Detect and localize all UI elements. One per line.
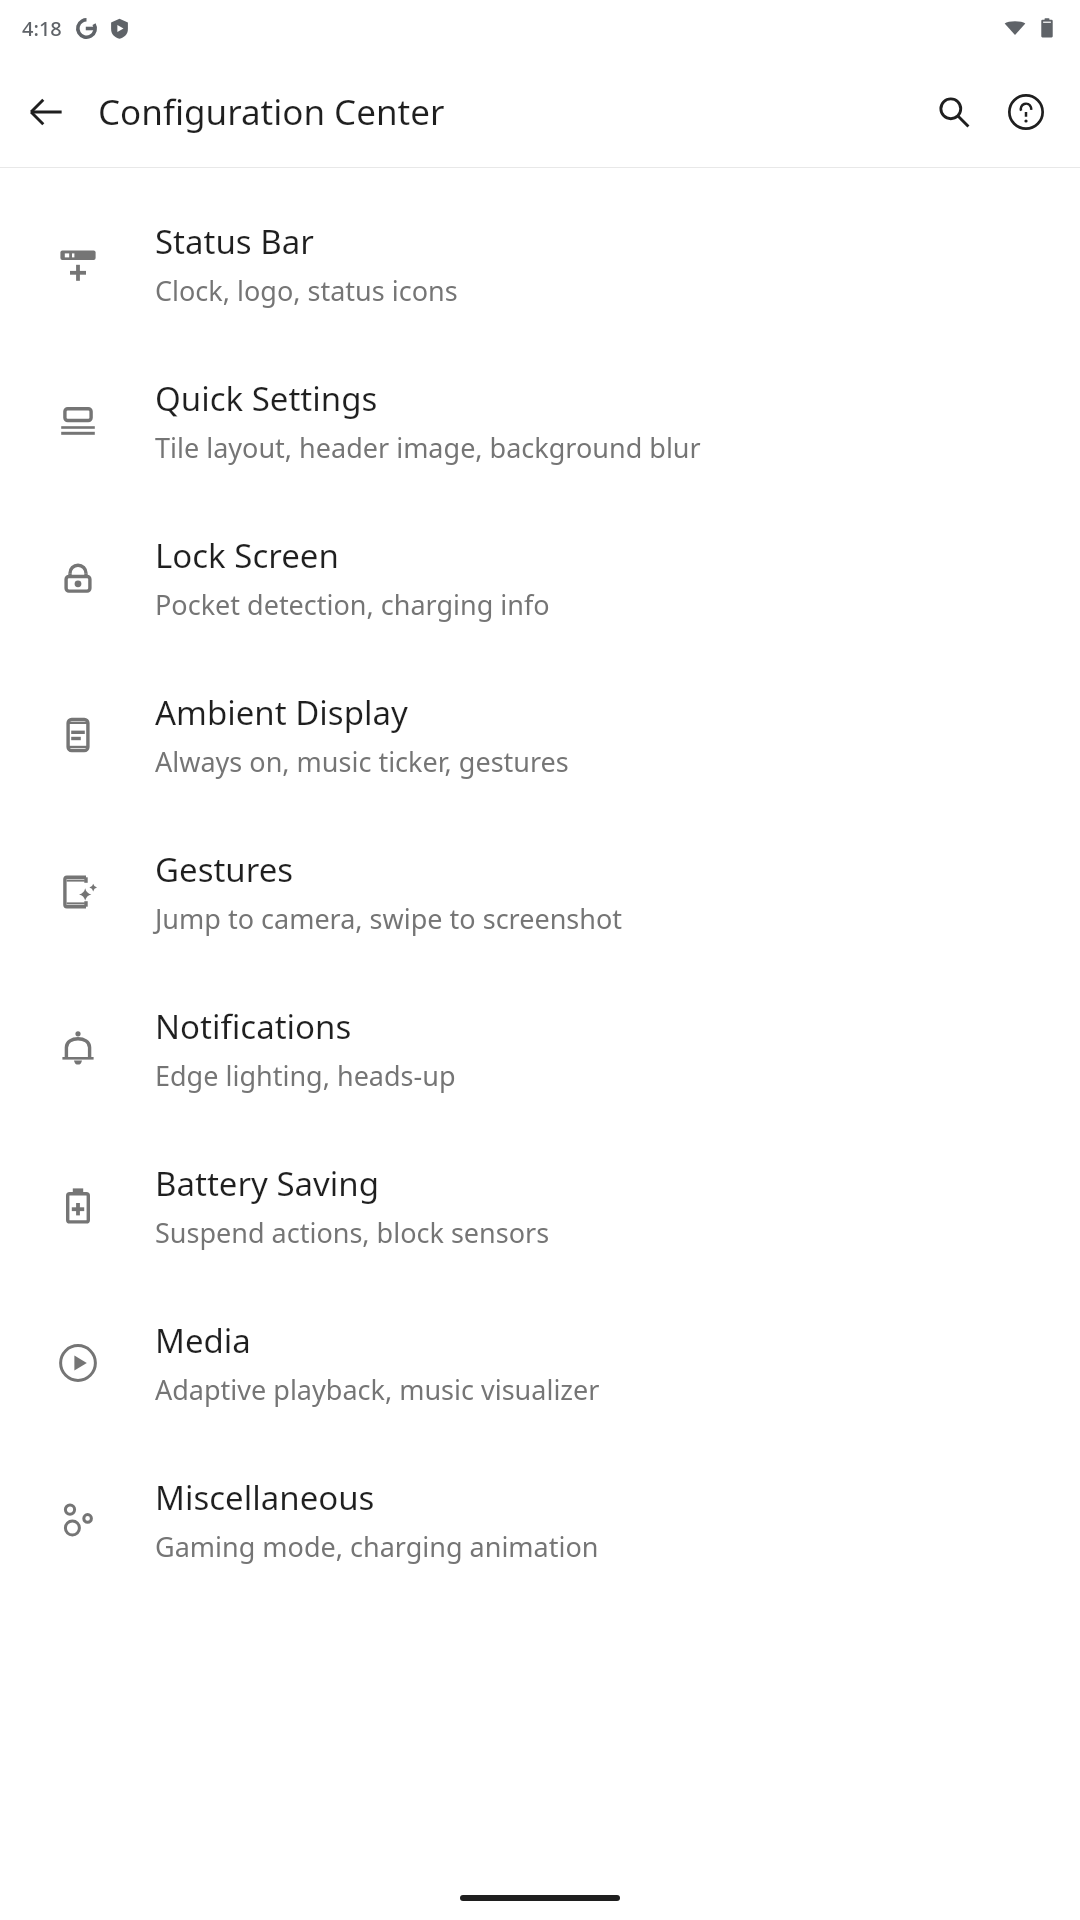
staticText: Battery Saving: [155, 1161, 380, 1206]
button[interactable]: Search: [918, 76, 990, 148]
staticText: Tile layout, header image, background bl…: [155, 429, 701, 466]
button[interactable]: Quick Settings: [0, 342, 1080, 499]
staticText: Quick Settings: [155, 376, 378, 421]
button[interactable]: Ambient Display: [0, 656, 1080, 813]
staticText: Notifications: [155, 1004, 352, 1049]
staticText: Lock Screen: [155, 533, 339, 578]
staticText: Status Bar: [155, 219, 314, 264]
staticText: Media: [155, 1318, 251, 1363]
button[interactable]: Back: [10, 76, 82, 148]
staticText: Miscellaneous: [155, 1475, 375, 1520]
staticText: Pocket detection, charging info: [155, 586, 550, 623]
button[interactable]: Miscellaneous: [0, 1441, 1080, 1598]
button[interactable]: Notifications: [0, 970, 1080, 1127]
staticText: Always on, music ticker, gestures: [155, 743, 569, 780]
staticText: Edge lighting, heads-up: [155, 1057, 456, 1094]
button[interactable]: Media: [0, 1284, 1080, 1441]
staticText: Configuration Center: [98, 88, 445, 136]
button[interactable]: Battery Saving: [0, 1127, 1080, 1284]
staticText: Clock, logo, status icons: [155, 272, 458, 309]
staticText: Gestures: [155, 847, 294, 892]
staticText: Adaptive playback, music visualizer: [155, 1371, 600, 1408]
button[interactable]: Gestures: [0, 813, 1080, 970]
button[interactable]: Help: [990, 76, 1062, 148]
button[interactable]: Lock Screen: [0, 499, 1080, 656]
staticText: Gaming mode, charging animation: [155, 1528, 599, 1565]
staticText: 4:18: [22, 15, 62, 42]
staticText: Suspend actions, block sensors: [155, 1214, 550, 1251]
staticText: Ambient Display: [155, 690, 408, 735]
staticText: Jump to camera, swipe to screenshot: [155, 900, 623, 937]
button[interactable]: Status Bar: [0, 185, 1080, 342]
